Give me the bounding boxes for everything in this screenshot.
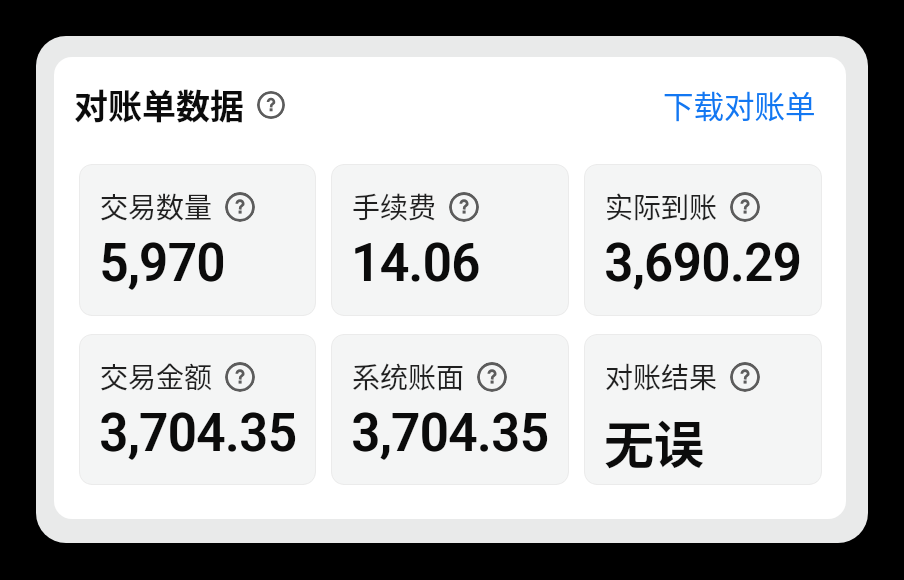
staticText: 对账结果 xyxy=(605,356,718,397)
staticText: 对账单数据 xyxy=(74,80,244,129)
staticText: 3,704.35 xyxy=(352,402,550,464)
staticText: 3,704.35 xyxy=(100,402,298,464)
staticText: 交易金额 xyxy=(100,356,213,397)
staticText: 实际到账 xyxy=(605,186,718,227)
staticText: 14.06 xyxy=(351,232,480,294)
staticText: 3,690.29 xyxy=(604,232,802,294)
staticText: 3,690.29 xyxy=(605,232,803,294)
button[interactable]: 交易金额 说明 xyxy=(225,362,255,392)
button[interactable]: 实际到账 xyxy=(584,164,822,316)
staticText: 14.06 xyxy=(352,232,481,294)
button[interactable]: 对账单数据说明 xyxy=(257,91,285,119)
staticText: 3,704.35 xyxy=(99,402,297,464)
staticText: 手续费 xyxy=(352,186,437,227)
button[interactable]: 手续费 xyxy=(331,164,569,316)
button[interactable]: 下载对账单 xyxy=(663,83,816,127)
button[interactable]: 交易金额 xyxy=(79,334,316,485)
staticText: 系统账面 xyxy=(352,356,465,397)
button[interactable]: 交易数量 说明 xyxy=(225,192,255,222)
button[interactable]: 系统账面 xyxy=(331,334,569,485)
button[interactable]: 对账结果 说明 xyxy=(730,362,760,392)
button[interactable]: 实际到账 说明 xyxy=(730,192,760,222)
button[interactable]: 对账结果 xyxy=(584,334,822,485)
button[interactable]: 交易数量 xyxy=(79,164,316,316)
staticText: 交易数量 xyxy=(100,186,213,227)
button[interactable]: 手续费 说明 xyxy=(449,192,479,222)
staticText: 5,970 xyxy=(99,232,226,294)
staticText: 无误 xyxy=(604,405,704,477)
staticText: 3,704.35 xyxy=(351,402,549,464)
button[interactable]: 系统账面 说明 xyxy=(477,362,507,392)
staticText: 下载对账单 xyxy=(663,83,816,127)
staticText: 5,970 xyxy=(100,232,227,294)
